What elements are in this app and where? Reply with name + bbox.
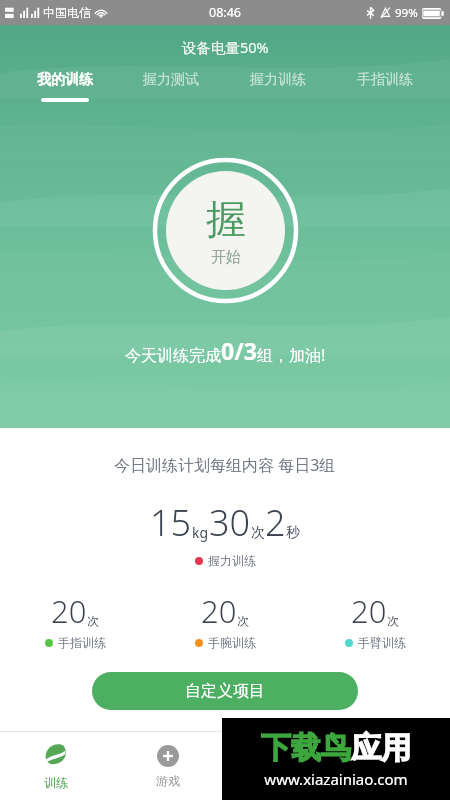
button[interactable]: 数据 bbox=[224, 732, 337, 800]
staticText: 握 bbox=[206, 194, 246, 244]
staticText: 99% bbox=[395, 5, 418, 21]
staticText: 应用 bbox=[351, 729, 411, 767]
staticText: 次 bbox=[87, 613, 99, 628]
staticText: www.xiazainiao.com bbox=[264, 769, 408, 789]
staticText: 今天训练完成 bbox=[125, 346, 221, 366]
staticText: 我的训练 bbox=[37, 71, 93, 89]
button[interactable]: 20 bbox=[0, 590, 150, 650]
staticText: 手腕训练 bbox=[208, 635, 256, 650]
staticText: 次 bbox=[237, 613, 249, 628]
staticText: 开始 bbox=[211, 248, 241, 267]
button[interactable]: 握力测试 bbox=[118, 71, 224, 89]
staticText: 0/3 bbox=[221, 335, 257, 366]
staticText: 设备电量50% bbox=[182, 37, 269, 57]
staticText: 手臂训练 bbox=[358, 635, 406, 650]
staticText: 20 bbox=[51, 590, 87, 632]
staticText: 下载鸟 bbox=[261, 729, 351, 767]
staticText: 次 bbox=[251, 524, 265, 542]
staticText: 握力测试 bbox=[143, 71, 199, 89]
button[interactable]: 20 bbox=[150, 590, 300, 650]
button[interactable]: 我的 bbox=[337, 732, 450, 800]
staticText: 握力训练 bbox=[208, 553, 256, 568]
button[interactable]: 手指训练 bbox=[331, 71, 438, 89]
button[interactable]: 自定义项目 bbox=[92, 672, 358, 710]
staticText: 游戏 bbox=[156, 773, 180, 788]
staticText: 30 bbox=[209, 498, 251, 547]
staticText: 中国电信 bbox=[43, 5, 91, 20]
staticText: 20 bbox=[201, 590, 237, 632]
staticText: 自定义项目 bbox=[185, 681, 265, 701]
button[interactable]: 游戏 bbox=[112, 732, 224, 800]
staticText: 我的 bbox=[382, 773, 406, 788]
staticText: 秒 bbox=[286, 524, 300, 542]
staticText: 握力训练 bbox=[250, 71, 306, 89]
staticText: 2 bbox=[265, 498, 286, 547]
staticText: 今日训练计划每组内容 每日3组 bbox=[114, 454, 336, 476]
staticText: 训练 bbox=[44, 775, 68, 790]
staticText: 手指训练 bbox=[357, 71, 413, 89]
staticText: 数据 bbox=[269, 773, 293, 788]
button[interactable]: 20 bbox=[300, 590, 450, 650]
staticText: 组，加油! bbox=[257, 344, 326, 366]
button[interactable]: 我的训练 bbox=[12, 71, 118, 89]
staticText: 手指训练 bbox=[58, 635, 106, 650]
staticText: 08:46 bbox=[209, 4, 241, 21]
staticText: 20 bbox=[351, 590, 387, 632]
staticText: 次 bbox=[387, 613, 399, 628]
staticText: kg bbox=[192, 523, 209, 542]
button[interactable]: 握力训练 bbox=[224, 71, 331, 89]
staticText: 15 bbox=[150, 498, 192, 547]
button[interactable]: 训练 bbox=[0, 732, 112, 800]
button[interactable]: 握 bbox=[155, 160, 296, 301]
